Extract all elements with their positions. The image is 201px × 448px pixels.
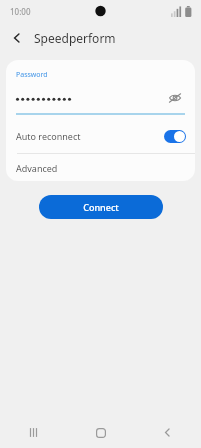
- button[interactable]: Auto reconnect: [6, 123, 195, 149]
- staticText: Connect: [83, 201, 119, 213]
- button[interactable]: Back: [5, 26, 29, 50]
- button[interactable]: Recents: [0, 417, 67, 448]
- button[interactable]: Password: [6, 60, 195, 113]
- button[interactable]: Connect: [39, 195, 163, 219]
- staticText: Speedperform: [34, 30, 116, 46]
- button[interactable]: Home: [67, 417, 134, 448]
- staticText: Advanced: [16, 162, 58, 174]
- button[interactable]: Advanced: [6, 154, 195, 181]
- button[interactable]: Show password: [163, 86, 187, 110]
- button[interactable]: Auto reconnect toggle: [164, 130, 186, 143]
- staticText: 10:00: [10, 6, 31, 17]
- button[interactable]: Back: [134, 417, 201, 448]
- staticText: Password: [16, 70, 48, 80]
- staticText: Auto reconnect: [16, 130, 164, 142]
